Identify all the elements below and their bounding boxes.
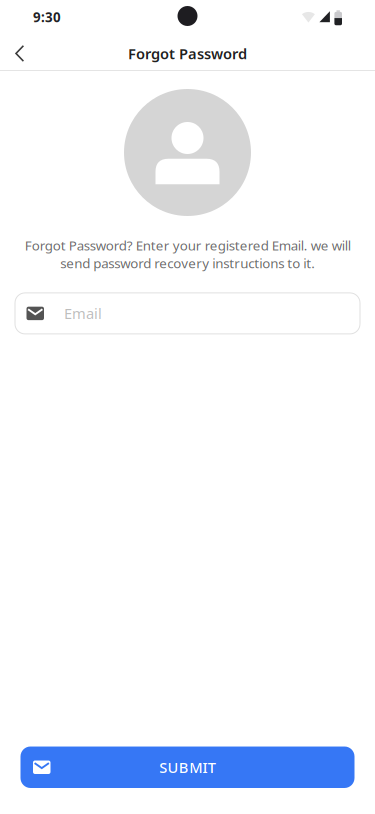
staticText: Forgot Password? Enter your registered E…	[24, 236, 350, 272]
staticText: 9:30	[33, 8, 61, 26]
staticText: Forgot Password	[128, 44, 247, 63]
button[interactable]: Back	[0, 38, 24, 69]
button[interactable]: Email	[0, 293, 375, 334]
button[interactable]: SUBMIT	[0, 746, 375, 788]
staticText: Email	[64, 304, 102, 323]
staticText: SUBMIT	[159, 757, 216, 777]
